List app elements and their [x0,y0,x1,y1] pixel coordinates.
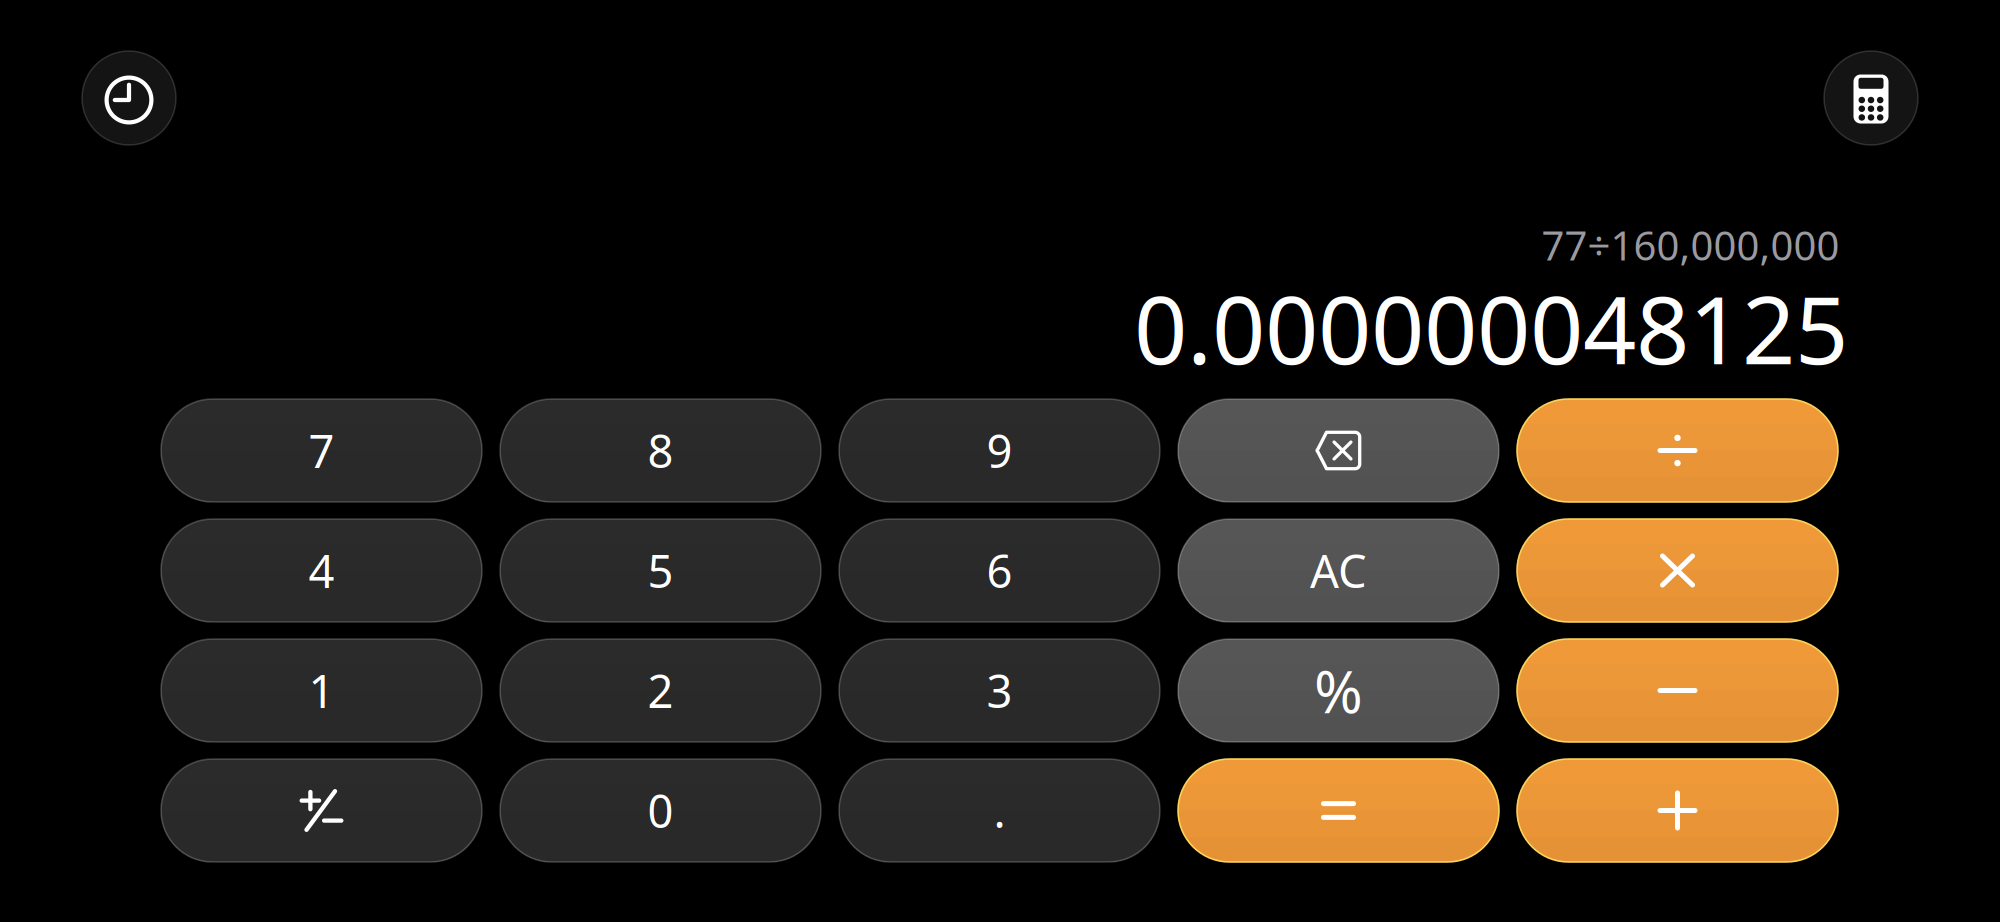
button[interactable]: Plus minus [161,759,482,862]
button[interactable]: Divide [1517,399,1838,502]
staticText: 8 [647,420,673,481]
button[interactable]: Equals [1178,759,1499,862]
button[interactable]: 3 [839,639,1160,742]
button[interactable]: 7 [161,399,482,502]
button[interactable]: AC [1178,519,1499,622]
staticText: 7 [308,420,334,481]
button[interactable]: Subtract [1517,639,1838,742]
staticText: % [1314,651,1363,729]
button[interactable]: 8 [500,399,821,502]
button[interactable]: % [1178,639,1499,742]
staticText: 3 [986,660,1012,721]
staticText: . [993,780,1005,841]
staticText: 9 [986,420,1012,481]
button[interactable]: 5 [500,519,821,622]
button[interactable]: 0 [500,759,821,862]
staticText: 6 [986,540,1012,601]
staticText: 77÷160,000,000 [1541,218,1839,271]
button[interactable]: 4 [161,519,482,622]
button[interactable]: History [82,51,176,145]
staticText: 5 [647,540,673,601]
button[interactable]: 2 [500,639,821,742]
staticText: AC [1310,540,1367,601]
staticText: 0 [647,780,673,841]
button[interactable]: . [839,759,1160,862]
button[interactable]: 6 [839,519,1160,622]
button[interactable]: 9 [839,399,1160,502]
button[interactable]: 1 [161,639,482,742]
button[interactable]: Calculator [1824,51,1918,145]
button[interactable]: Add [1517,759,1838,862]
staticText: 2 [647,660,673,721]
staticText: 0.000000048125 [1134,266,1848,390]
button[interactable]: Multiply [1517,519,1838,622]
button[interactable]: Backspace [1178,399,1499,502]
staticText: 4 [308,540,334,601]
staticText: 1 [308,660,334,721]
